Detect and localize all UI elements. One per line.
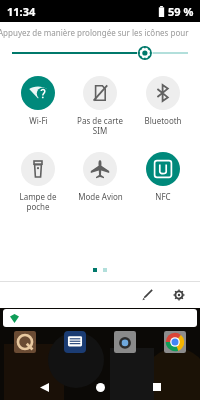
staticText: Bluetooth <box>144 115 182 126</box>
staticText: Mode Avion <box>78 191 123 202</box>
staticText: Pas de carte SIM <box>77 115 123 136</box>
staticText: Lampe de poche <box>19 191 57 212</box>
button[interactable]: Search <box>3 309 197 327</box>
button[interactable]: Phone <box>14 331 36 353</box>
button[interactable]: Recents <box>144 374 170 400</box>
button[interactable]: Wi-Fi <box>9 74 67 126</box>
button[interactable]: Edit <box>136 284 158 306</box>
staticText: NFC <box>155 191 171 202</box>
button[interactable]: Lampe de poche <box>9 150 67 212</box>
staticText: 11:34 <box>7 4 36 19</box>
button[interactable]: NFC <box>134 150 192 202</box>
button[interactable]: Back <box>31 374 57 400</box>
button[interactable]: Camera <box>114 331 136 353</box>
button[interactable]: Messages <box>64 331 86 353</box>
button[interactable]: Home <box>87 374 113 400</box>
staticText: Wi-Fi <box>29 115 48 126</box>
button[interactable]: Mode Avion <box>71 150 129 202</box>
button[interactable]: Brightness <box>0 42 200 64</box>
button[interactable]: Bluetooth <box>134 74 192 126</box>
button[interactable]: Settings <box>168 284 190 306</box>
button[interactable]: Pas de carte SIM <box>71 74 129 136</box>
staticText: 59 % <box>168 4 194 19</box>
staticText: Appuyez de manière prolongée sur les icô… <box>0 27 198 38</box>
button[interactable]: Chrome <box>164 331 186 353</box>
